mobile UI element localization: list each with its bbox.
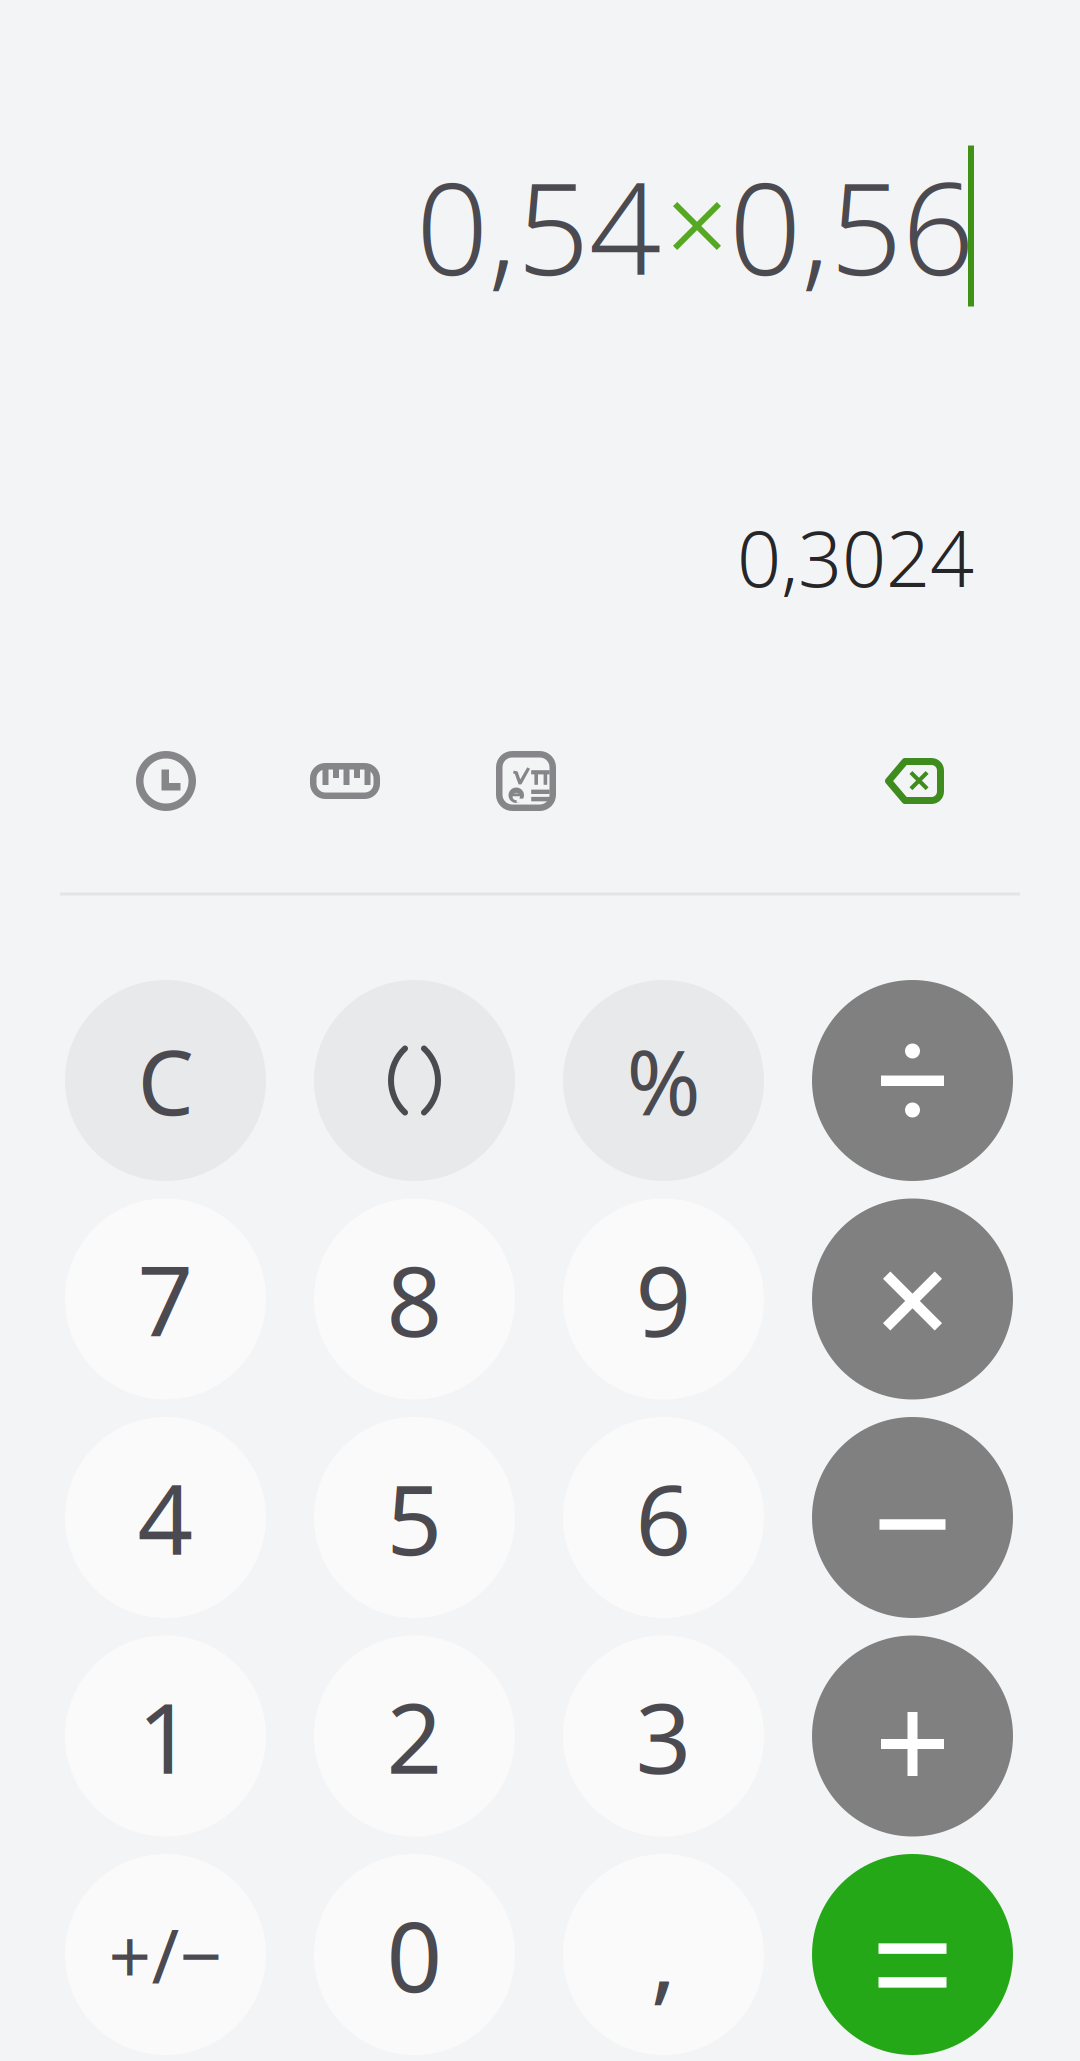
staticText: 8 [386,1234,442,1364]
staticText: 0,56 [729,142,974,310]
button[interactable]: 4 [65,1417,266,1618]
staticText: 6 [635,1453,691,1582]
staticText: +/− [108,1905,222,2004]
button[interactable] [812,1635,1013,1836]
button[interactable]: , [563,1854,764,2055]
button[interactable]: C [65,980,266,1181]
button[interactable]: 0 [314,1854,515,2055]
staticText: 0 [386,1890,442,2019]
button[interactable]: % [563,980,764,1181]
button[interactable] [812,1417,1013,1618]
staticText: 5 [386,1453,442,1582]
button[interactable]: 5 [314,1417,515,1618]
staticText: 2 [386,1671,442,1801]
button[interactable] [812,980,1013,1181]
staticText: 9 [635,1234,691,1364]
button[interactable]: 3 [563,1635,764,1836]
button[interactable]: Scientific calculator [496,751,556,811]
staticText: , [650,1890,676,2019]
staticText: 4 [137,1453,193,1582]
staticText: 7 [137,1234,193,1364]
button[interactable]: +/− [65,1854,266,2055]
button[interactable] [812,1854,1013,2055]
button[interactable]: 2 [314,1635,515,1836]
button[interactable]: 6 [563,1417,764,1618]
staticText: 1 [137,1671,193,1801]
button[interactable]: 9 [563,1198,764,1399]
button[interactable]: Backspace [884,758,944,804]
staticText: 0,3024 [737,506,974,608]
button[interactable]: 7 [65,1198,266,1399]
button[interactable] [314,980,515,1181]
staticText: % [626,1021,700,1140]
staticText: C [137,1021,193,1140]
button[interactable]: 8 [314,1198,515,1399]
staticText: 0,54 [416,142,661,310]
button[interactable]: Unit converter [310,763,380,799]
staticText: 3 [635,1671,691,1801]
button[interactable]: 1 [65,1635,266,1836]
button[interactable] [812,1198,1013,1399]
button[interactable]: History [136,751,196,811]
